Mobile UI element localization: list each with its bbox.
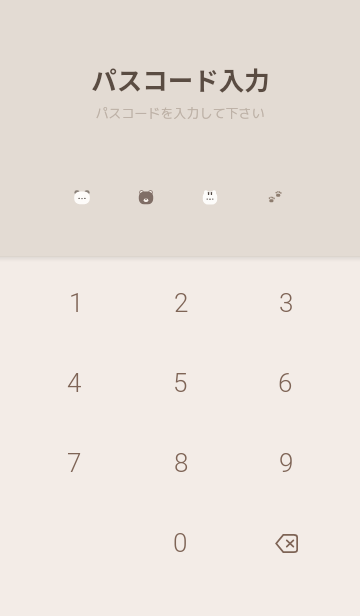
button[interactable]: 9 xyxy=(234,424,338,502)
button[interactable]: Backspace xyxy=(234,504,338,582)
staticText: 8 xyxy=(174,448,189,478)
staticText: 3 xyxy=(279,288,294,318)
other: Passcode digit 3 entered xyxy=(190,177,230,217)
staticText: 0 xyxy=(173,528,188,558)
button[interactable]: 7 xyxy=(22,424,126,502)
button[interactable]: 2 xyxy=(129,264,233,342)
other: Passcode digit 1 entered xyxy=(62,177,102,217)
staticText: 2 xyxy=(174,288,189,318)
button[interactable]: 4 xyxy=(22,344,126,422)
staticText: パスコードを入力して下さい xyxy=(95,104,265,122)
button[interactable]: 5 xyxy=(128,344,232,422)
staticText: 9 xyxy=(279,448,294,478)
other: Passcode digit 4 empty xyxy=(254,177,294,217)
other: Passcode digit 2 entered xyxy=(126,177,166,217)
button[interactable]: 3 xyxy=(234,264,338,342)
staticText: 1 xyxy=(69,288,84,318)
staticText: 7 xyxy=(67,448,82,478)
staticText: パスコード入力 xyxy=(91,60,270,97)
button[interactable]: 1 xyxy=(24,264,128,342)
button[interactable]: 0 xyxy=(128,504,232,582)
button[interactable]: 8 xyxy=(129,424,233,502)
staticText: 6 xyxy=(278,368,293,398)
staticText: 4 xyxy=(67,368,82,398)
button[interactable]: 6 xyxy=(233,344,337,422)
staticText: 5 xyxy=(173,368,188,398)
